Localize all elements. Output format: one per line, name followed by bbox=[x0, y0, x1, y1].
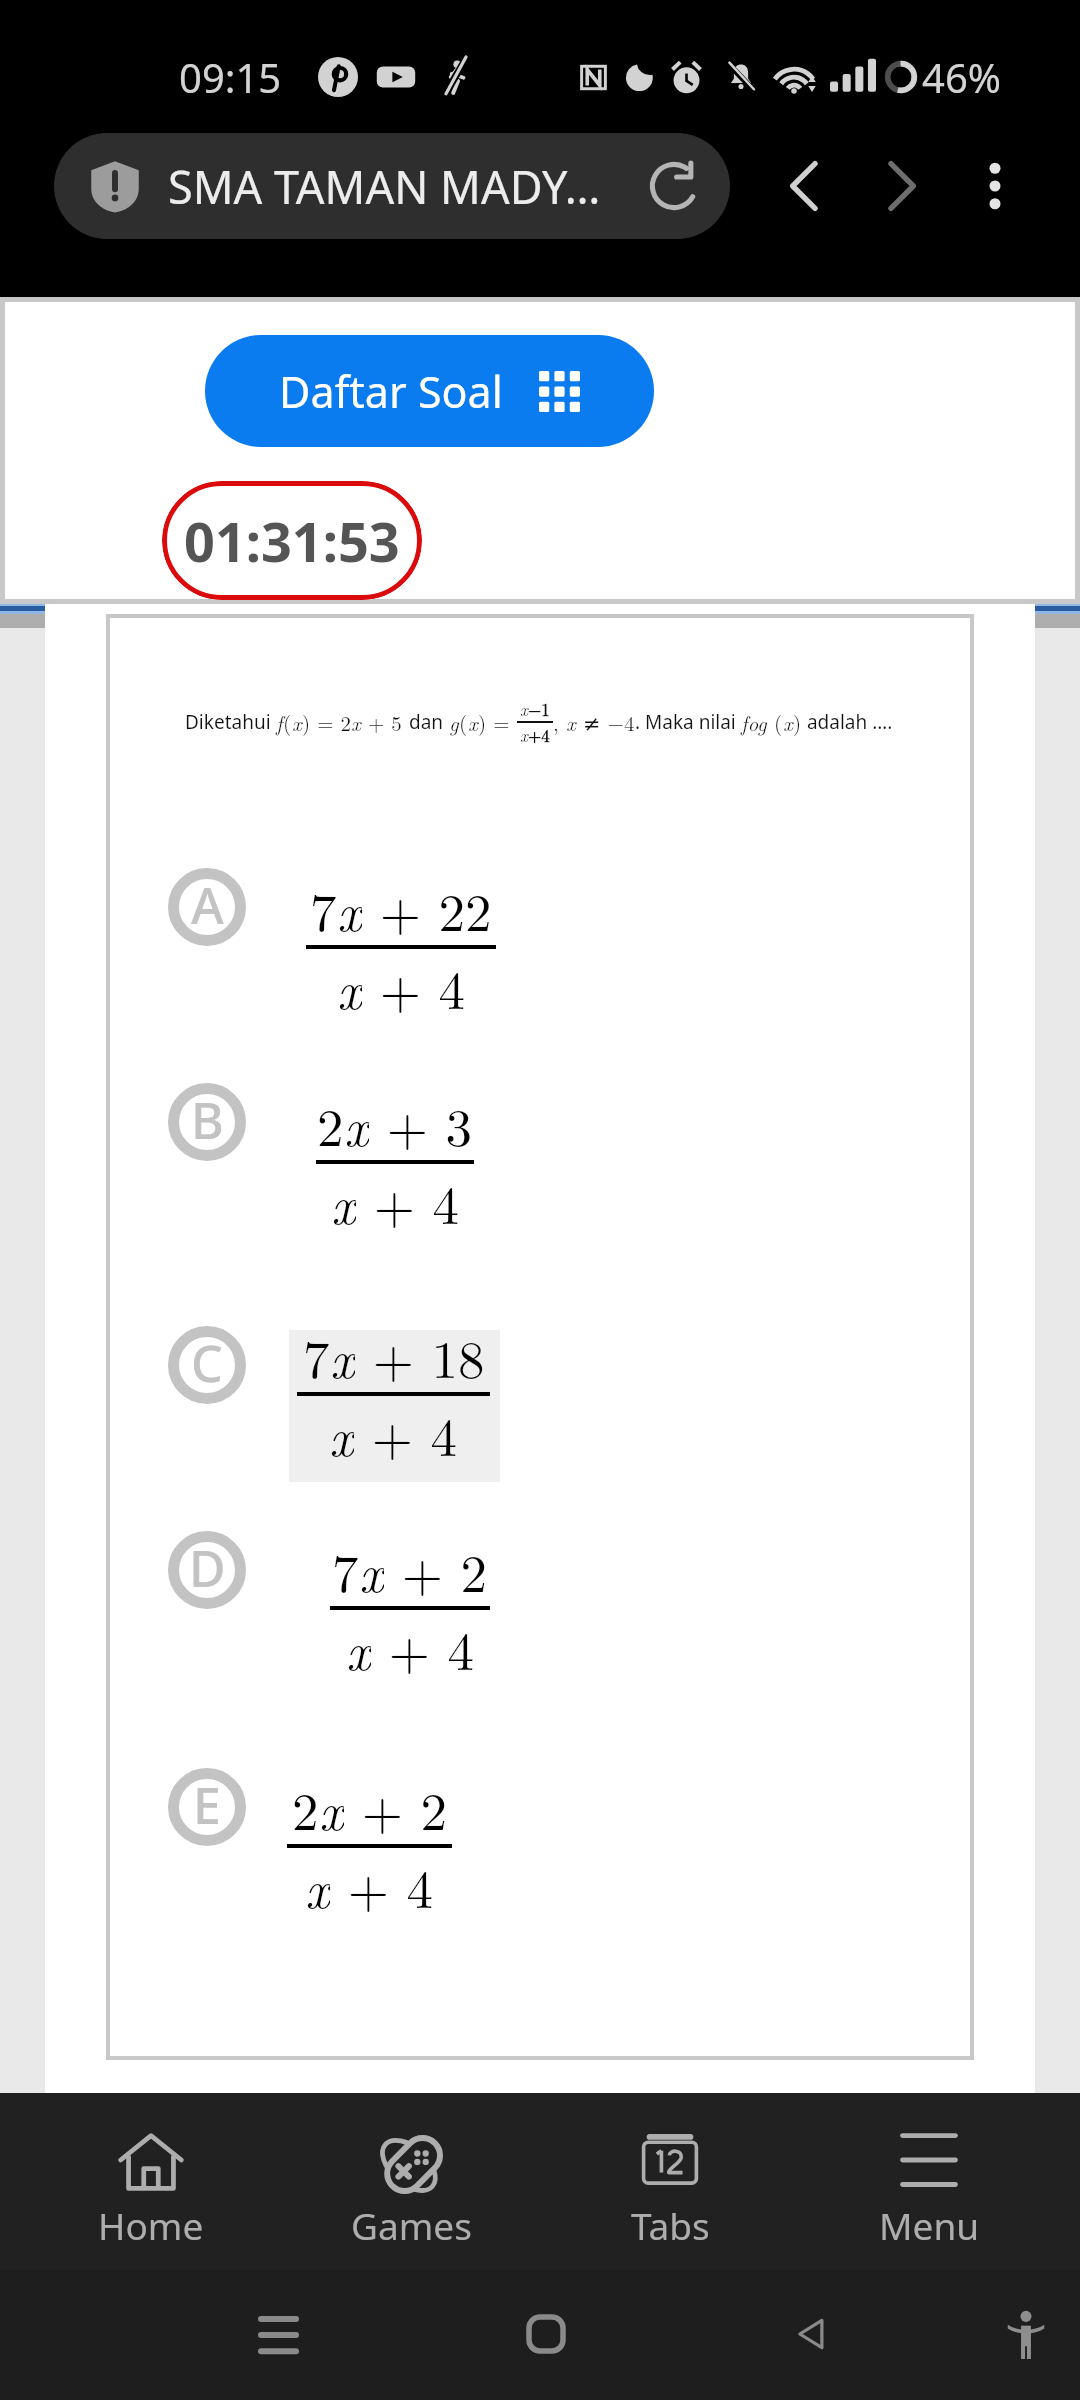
staticText: ) = 2 bbox=[302, 707, 351, 737]
staticText: + 18 bbox=[355, 1318, 485, 1392]
staticText: x bbox=[337, 949, 362, 1023]
staticText: + 4 bbox=[356, 1164, 460, 1238]
staticText: 09:15 bbox=[179, 50, 282, 104]
button[interactable]: 01:31:53 bbox=[162, 481, 422, 600]
staticText: 01:31:53 bbox=[184, 504, 400, 578]
staticText: 7 bbox=[303, 1318, 330, 1392]
staticText: x bbox=[292, 707, 302, 737]
staticText: SMA TAMAN MADY… bbox=[168, 156, 601, 217]
staticText: + 4 bbox=[354, 1396, 458, 1470]
staticText: x bbox=[566, 707, 576, 737]
button[interactable] bbox=[106, 1752, 974, 1952]
staticText: ( bbox=[767, 707, 783, 737]
staticText: Tabs bbox=[631, 2200, 710, 2250]
staticText: x bbox=[337, 871, 362, 945]
staticText: x bbox=[305, 1848, 330, 1922]
staticText: Menu bbox=[879, 2200, 980, 2250]
staticText: x bbox=[319, 1770, 344, 1844]
staticText: x bbox=[468, 707, 478, 737]
staticText: 7 bbox=[310, 871, 337, 945]
staticText: ) bbox=[793, 707, 802, 737]
staticText: dan bbox=[409, 709, 449, 735]
staticText: Games bbox=[351, 2200, 472, 2250]
staticText: D bbox=[189, 1534, 226, 1602]
staticText: x bbox=[359, 1532, 384, 1606]
staticText: g bbox=[449, 707, 459, 737]
button[interactable]: Tabs bbox=[560, 2093, 780, 2269]
staticText: + 4 bbox=[362, 949, 466, 1023]
button[interactable]: Menu bbox=[819, 2093, 1039, 2269]
staticText: x bbox=[331, 1164, 356, 1238]
staticText: B bbox=[191, 1086, 224, 1154]
staticText: 7 bbox=[332, 1532, 359, 1606]
staticText: E bbox=[193, 1771, 221, 1839]
staticText: C bbox=[191, 1329, 223, 1397]
staticText: 2 bbox=[317, 1086, 344, 1160]
button[interactable]: Back bbox=[752, 133, 858, 239]
button[interactable]: More options bbox=[942, 133, 1048, 239]
staticText: . Maka nilai bbox=[635, 709, 741, 735]
staticText: ) = bbox=[478, 707, 517, 737]
staticText: ( bbox=[459, 707, 468, 737]
staticText: Daftar Soal bbox=[279, 362, 503, 421]
staticText: x bbox=[330, 1318, 355, 1392]
staticText: −1 bbox=[528, 697, 550, 721]
staticText: + 3 bbox=[369, 1086, 473, 1160]
button[interactable]: Daftar Soal bbox=[205, 335, 654, 447]
staticText: Diketahui bbox=[185, 709, 276, 735]
button[interactable] bbox=[106, 1515, 974, 1715]
staticText: , bbox=[553, 707, 566, 737]
button[interactable]: Games bbox=[301, 2093, 521, 2269]
staticText: ( bbox=[283, 707, 292, 737]
staticText: + 2 bbox=[384, 1532, 488, 1606]
staticText: x bbox=[520, 723, 528, 747]
staticText: x bbox=[783, 707, 793, 737]
staticText: x bbox=[344, 1086, 369, 1160]
button[interactable] bbox=[106, 1067, 974, 1267]
staticText: + 2 bbox=[344, 1770, 448, 1844]
staticText: + 5 bbox=[361, 707, 409, 737]
staticText: + 4 bbox=[371, 1610, 475, 1684]
button[interactable]: SMA TAMAN MADY… bbox=[54, 133, 730, 239]
staticText: Home bbox=[98, 2200, 204, 2250]
staticText: + 22 bbox=[362, 871, 492, 945]
staticText: x bbox=[351, 707, 361, 737]
button[interactable]: Accessibility bbox=[986, 2294, 1066, 2374]
button[interactable]: Forward bbox=[848, 133, 954, 239]
staticText: +4 bbox=[528, 723, 550, 747]
staticText: x bbox=[346, 1610, 371, 1684]
staticText: adalah …. bbox=[802, 709, 893, 735]
staticText: + 4 bbox=[330, 1848, 434, 1922]
staticText: ≠ −4 bbox=[576, 707, 635, 737]
button[interactable]: Back bbox=[772, 2294, 852, 2374]
button[interactable] bbox=[106, 852, 974, 1052]
button[interactable]: Home bbox=[41, 2093, 261, 2269]
staticText: fog bbox=[741, 707, 767, 737]
staticText: A bbox=[191, 871, 224, 939]
staticText: f bbox=[276, 707, 283, 737]
button[interactable]: Home bbox=[506, 2294, 586, 2374]
staticText: x bbox=[520, 697, 528, 721]
staticText: 46% bbox=[922, 50, 1001, 104]
button[interactable]: Recents bbox=[238, 2294, 318, 2374]
staticText: x bbox=[329, 1396, 354, 1470]
button[interactable] bbox=[106, 1310, 974, 1510]
staticText: 2 bbox=[292, 1770, 319, 1844]
